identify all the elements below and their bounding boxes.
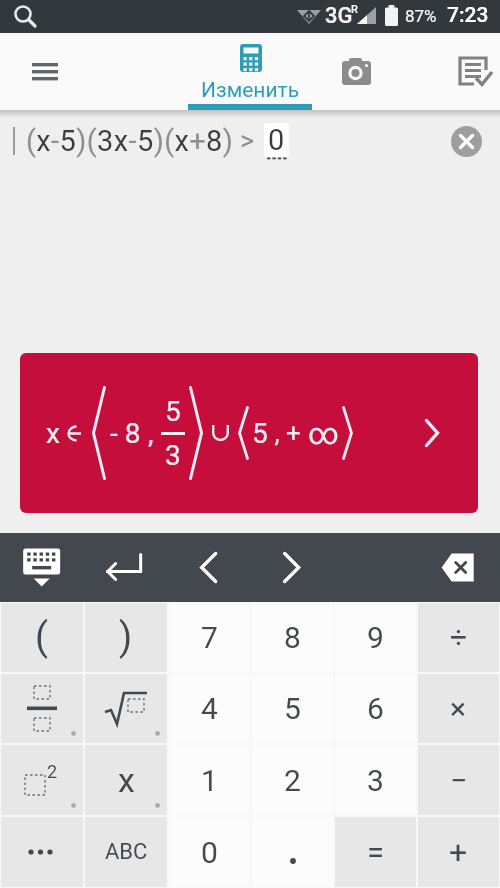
staticText: 8 <box>284 620 301 655</box>
staticText: ) <box>119 615 133 660</box>
button[interactable] <box>252 817 333 887</box>
button[interactable]: 1 <box>169 745 250 815</box>
button[interactable]: × <box>418 674 499 743</box>
button[interactable]: − <box>418 745 499 815</box>
staticText: 9 <box>367 620 384 655</box>
button[interactable]: + <box>418 817 499 887</box>
staticText: = <box>367 834 385 870</box>
button[interactable]: 2 <box>252 745 333 815</box>
staticText: 2 <box>284 763 301 798</box>
staticText: 4 <box>201 691 218 726</box>
button[interactable] <box>0 533 83 602</box>
staticText: ( <box>35 615 49 660</box>
button[interactable] <box>451 126 482 157</box>
staticText: 0 <box>268 123 285 157</box>
staticText: 7:23 <box>447 3 489 28</box>
button[interactable]: ÷ <box>418 603 499 672</box>
staticText: (x-5)(3x-5)(x+8) <box>26 124 234 158</box>
button[interactable]: 7 <box>169 603 250 672</box>
button[interactable]: ABC <box>85 817 167 887</box>
staticText: ABC <box>105 839 148 865</box>
staticText: 2 <box>47 761 58 782</box>
staticText: 5 <box>165 395 181 428</box>
staticText: 1 <box>201 763 218 798</box>
button[interactable] <box>340 52 386 96</box>
button[interactable] <box>417 533 500 602</box>
button[interactable]: 8 <box>252 603 333 672</box>
staticText: × <box>450 691 467 726</box>
staticText: , <box>141 417 161 450</box>
button[interactable]: Изменить <box>201 33 300 103</box>
staticText: 87% <box>405 6 437 26</box>
staticText: 0 <box>201 835 218 870</box>
button[interactable] <box>85 674 167 743</box>
staticText: Изменить <box>201 78 300 103</box>
staticText: 3 <box>367 763 384 798</box>
button[interactable]: 5 <box>252 674 333 743</box>
button[interactable] <box>250 533 333 602</box>
staticText: 7 <box>201 620 218 655</box>
staticText: 3G <box>325 3 353 29</box>
staticText: − <box>450 763 468 798</box>
button[interactable]: x <box>85 745 167 815</box>
staticText: ÷ <box>450 620 468 655</box>
button[interactable] <box>452 50 498 94</box>
button[interactable]: 4 <box>169 674 250 743</box>
button[interactable]: 6 <box>335 674 416 743</box>
staticText: x <box>118 760 135 800</box>
button[interactable]: 2 <box>1 745 83 815</box>
staticText: 5 <box>284 691 301 726</box>
staticText: R <box>351 3 358 16</box>
staticText: > <box>240 125 255 157</box>
staticText: x <box>46 417 60 450</box>
staticText: 6 <box>367 691 384 726</box>
staticText: 5 <box>252 417 268 450</box>
staticText: , + <box>268 418 308 448</box>
button[interactable]: ) <box>85 603 167 672</box>
button[interactable] <box>167 533 250 602</box>
button[interactable] <box>83 533 166 602</box>
button[interactable] <box>1 674 83 743</box>
button[interactable]: ( <box>1 603 83 672</box>
staticText: - 8 <box>110 417 141 450</box>
button[interactable] <box>22 48 70 96</box>
button[interactable]: 9 <box>335 603 416 672</box>
button[interactable]: 3 <box>335 745 416 815</box>
button[interactable]: 0 <box>169 817 250 887</box>
button[interactable]: x <box>20 353 478 513</box>
staticText: 3 <box>165 439 181 472</box>
button[interactable]: = <box>335 817 416 887</box>
button[interactable] <box>1 817 83 887</box>
staticText: + <box>449 833 468 871</box>
staticText: ∞ <box>308 416 339 451</box>
